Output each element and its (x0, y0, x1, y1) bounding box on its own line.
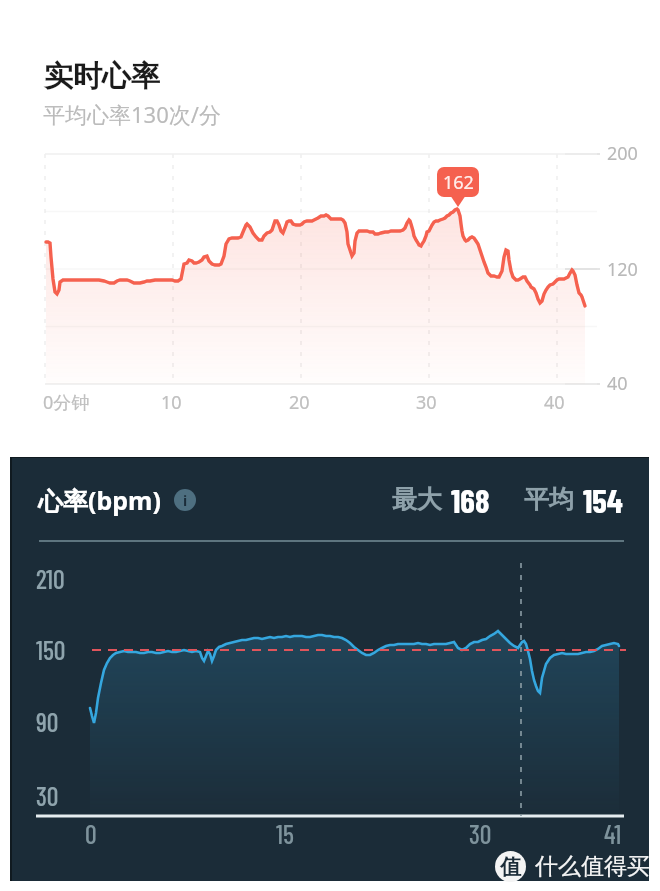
staticText: i (183, 491, 188, 510)
staticText: 30 (469, 818, 492, 849)
staticText: 值 (500, 854, 521, 880)
staticText: 200 (607, 141, 638, 166)
staticText: 154 (583, 480, 623, 520)
staticText: 15 (276, 818, 294, 849)
staticText: 心率(bpm) (38, 483, 161, 517)
staticText: 10 (161, 390, 182, 415)
staticText: 最大 (392, 484, 442, 515)
staticText: 30 (416, 390, 437, 415)
staticText: 0 (85, 818, 97, 849)
staticText: 40 (544, 390, 565, 415)
staticText: 什么值得买 (535, 852, 650, 881)
staticText: 41 (604, 818, 622, 849)
staticText: 90 (36, 706, 59, 737)
staticText: 平均 (524, 484, 574, 515)
staticText: 实时心率 (44, 58, 160, 95)
staticText: 150 (36, 634, 66, 665)
staticText: 20 (289, 390, 310, 415)
staticText: 210 (36, 563, 65, 594)
staticText: 40 (607, 371, 628, 396)
staticText: 168 (451, 480, 490, 520)
staticText: 162 (443, 170, 474, 195)
button[interactable]: Info (174, 489, 196, 511)
staticText: 平均心率130次/分 (43, 99, 221, 129)
staticText: 120 (607, 257, 638, 282)
staticText: 0分钟 (43, 390, 90, 415)
staticText: 30 (36, 780, 59, 811)
